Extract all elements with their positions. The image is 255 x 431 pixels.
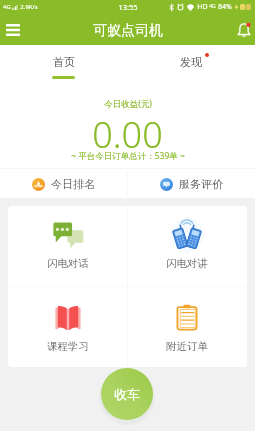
- staticText: 2.9K/s: [20, 3, 38, 11]
- staticText: 首页: [53, 55, 75, 69]
- staticText: 4G: [209, 3, 216, 10]
- staticText: 闪电对讲: [166, 257, 208, 270]
- staticText: 13:55: [118, 2, 138, 12]
- staticText: 4G: [3, 3, 11, 11]
- button[interactable]: Notifications: [232, 18, 255, 42]
- staticText: 0.00: [92, 110, 163, 159]
- button[interactable]: 闪电对话: [8, 206, 127, 286]
- button[interactable]: 发现: [127, 45, 255, 82]
- staticText: 课程学习: [47, 340, 89, 353]
- staticText: HD: [197, 2, 208, 12]
- staticText: 发现: [180, 55, 202, 69]
- button[interactable]: Menu: [1, 18, 25, 42]
- button[interactable]: 课程学习: [8, 286, 127, 367]
- staticText: ~ 平台今日订单总计：539单 ~: [71, 150, 185, 162]
- button[interactable]: 今日排名: [0, 169, 127, 198]
- staticText: 附近订单: [166, 340, 208, 353]
- staticText: 收车: [114, 386, 140, 402]
- staticText: 服务评价: [179, 177, 223, 191]
- button[interactable]: 服务评价: [127, 169, 255, 198]
- button[interactable]: 附近订单: [127, 286, 247, 367]
- button[interactable]: 收车: [101, 368, 153, 420]
- staticText: 可蚁点司机: [93, 22, 163, 40]
- staticText: 闪电对话: [47, 257, 89, 270]
- button[interactable]: 首页: [0, 45, 127, 82]
- staticText: 今日排名: [51, 177, 95, 191]
- staticText: 今日收益(元): [104, 98, 152, 110]
- button[interactable]: 闪电对讲: [127, 206, 247, 286]
- staticText: 84%: [218, 2, 232, 12]
